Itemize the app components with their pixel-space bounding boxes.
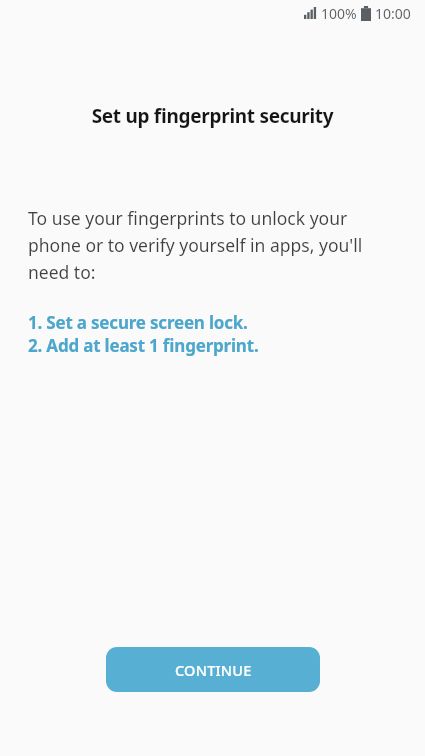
button[interactable]: CONTINUE: [106, 647, 320, 692]
staticText: 100%: [321, 4, 357, 23]
staticText: To use your fingerprints to unlock your …: [28, 206, 363, 284]
staticText: 1. Set a secure screen lock. 2. Add at l…: [28, 311, 259, 357]
staticText: CONTINUE: [175, 660, 252, 680]
staticText: 10:00: [375, 4, 411, 23]
staticText: Set up fingerprint security: [0, 103, 425, 129]
